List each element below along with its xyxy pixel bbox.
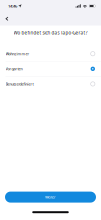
staticText: Wohnzimmer — [5, 51, 29, 56]
staticText: 14:46 — [8, 3, 17, 9]
staticText: Benutzerdefiniert — [5, 81, 33, 86]
button[interactable]: Weiter — [5, 192, 96, 203]
button[interactable]: Benutzerdefiniert — [0, 77, 101, 91]
staticText: Wo befindet sich das Tapo-Gerät? — [13, 30, 87, 36]
button[interactable]: Wohnzimmer — [0, 46, 101, 61]
button[interactable]: Back — [0, 12, 14, 25]
button[interactable]: Vorgarten — [0, 61, 101, 76]
staticText: Weiter — [45, 194, 56, 200]
staticText: Vorgarten — [5, 66, 22, 71]
